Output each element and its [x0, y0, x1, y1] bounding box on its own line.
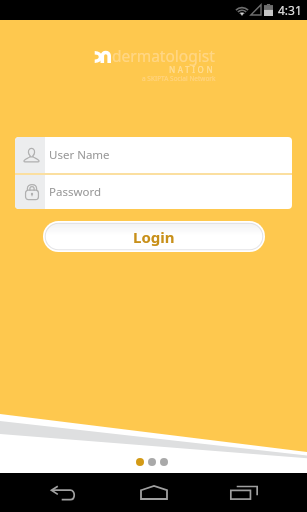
- button[interactable]: User Name: [15, 137, 292, 173]
- staticText: a SKIPTA Social Network: [142, 74, 216, 83]
- button[interactable]: Back: [37, 473, 89, 512]
- staticText: dermatologist: [112, 45, 215, 66]
- staticText: NATION: [169, 64, 216, 75]
- staticText: User Name: [49, 147, 110, 163]
- button[interactable]: Login: [43, 221, 265, 252]
- staticText: Password: [49, 184, 102, 200]
- button[interactable]: Page 2: [148, 458, 156, 466]
- button[interactable]: Home: [128, 473, 180, 512]
- button[interactable]: Password: [15, 175, 292, 209]
- button[interactable]: Recent apps: [218, 473, 270, 512]
- button[interactable]: Page 1: [136, 458, 144, 466]
- staticText: Login: [133, 227, 175, 247]
- button[interactable]: Page 3: [160, 458, 168, 466]
- staticText: 4:31: [278, 2, 302, 18]
